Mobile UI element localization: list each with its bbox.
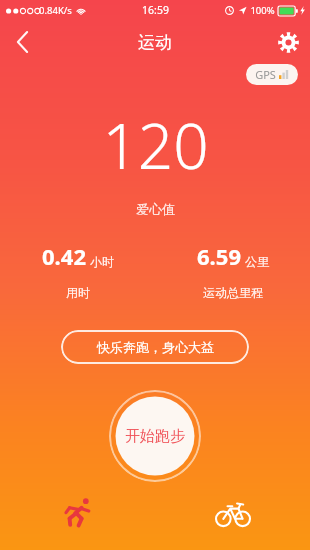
staticText: 公里 [245,254,269,269]
button[interactable]: Cycling mode [155,482,310,542]
staticText: 6.59 [197,241,241,271]
button[interactable]: Settings [266,20,310,64]
button[interactable]: Running mode [0,482,155,542]
staticText: 0.84K/s [39,4,72,17]
staticText: 120 [102,103,209,187]
button[interactable]: Back [0,20,44,64]
staticText: 快乐奔跑，身心大益 [97,339,214,355]
button[interactable]: 6.59 [155,241,310,300]
staticText: 0.42 [42,241,86,271]
staticText: 运动 [138,32,172,53]
button[interactable]: 开始跑步 [109,390,201,482]
button[interactable]: 快乐奔跑，身心大益 [61,330,249,364]
staticText: 运动总里程 [203,285,263,300]
button[interactable]: GPS [246,64,298,85]
staticText: 开始跑步 [125,427,185,446]
staticText: 用时 [66,285,90,300]
staticText: 16:59 [142,3,169,17]
staticText: 100% [250,4,275,17]
staticText: 爱心值 [136,201,175,217]
staticText: 小时 [90,254,114,269]
staticText: GPS [255,67,276,82]
button[interactable]: 0.42 [0,241,155,300]
